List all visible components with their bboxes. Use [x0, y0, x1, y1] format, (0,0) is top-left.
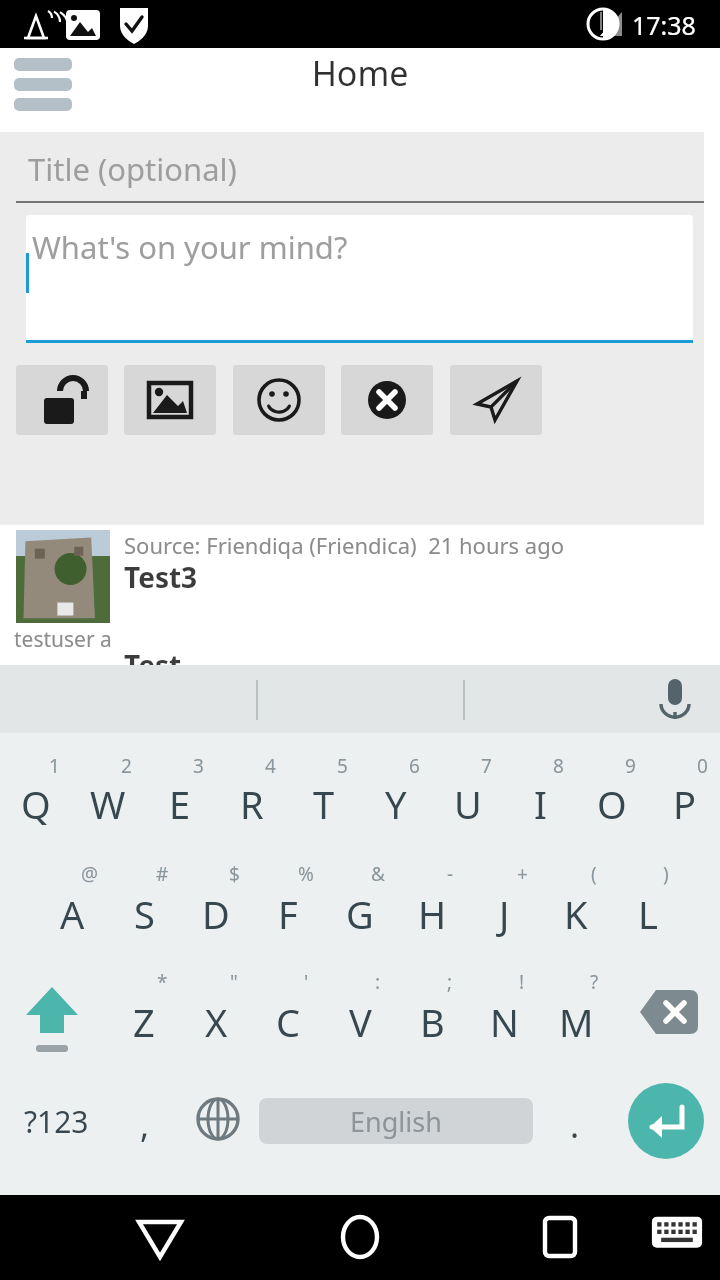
staticText: 3: [193, 753, 204, 779]
button[interactable]: Backspace: [630, 965, 706, 1071]
staticText: ,: [140, 1102, 150, 1148]
staticText: N: [490, 996, 519, 1048]
staticText: *: [157, 969, 168, 995]
button[interactable]: Permissions: [16, 365, 108, 435]
staticText: 6: [409, 753, 420, 779]
button[interactable]: C: [252, 965, 324, 1071]
button[interactable]: Q: [0, 745, 72, 851]
button[interactable]: ?123: [8, 1075, 104, 1167]
button[interactable]: Voice input: [645, 670, 705, 728]
staticText: E: [169, 778, 191, 830]
button[interactable]: Send: [450, 365, 542, 435]
button[interactable]: .: [540, 1075, 610, 1167]
staticText: Title (optional): [28, 148, 237, 190]
button[interactable]: Source: Friendiqa (Friendica) 21 hours a…: [120, 528, 720, 628]
staticText: 1: [49, 753, 60, 779]
button[interactable]: X: [180, 965, 252, 1071]
staticText: W: [90, 778, 126, 830]
button[interactable]: Z: [108, 965, 180, 1071]
staticText: G: [346, 888, 374, 940]
button[interactable]: Home: [320, 1200, 400, 1274]
staticText: +: [517, 861, 528, 887]
staticText: What's on your mind?: [32, 226, 348, 268]
staticText: ?123: [24, 1101, 89, 1142]
button[interactable]: Change language: [182, 1075, 254, 1167]
button[interactable]: U: [432, 745, 504, 851]
button[interactable]: N: [468, 965, 540, 1071]
staticText: I: [534, 778, 547, 830]
button[interactable]: V: [324, 965, 396, 1071]
button[interactable]: O: [576, 745, 648, 851]
staticText: ): [663, 861, 669, 887]
button[interactable]: Cancel: [341, 365, 433, 435]
staticText: T: [313, 778, 335, 830]
staticText: Y: [385, 778, 407, 830]
staticText: Test3: [124, 558, 198, 596]
staticText: (: [591, 861, 597, 887]
button[interactable]: M: [540, 965, 612, 1071]
staticText: :: [375, 969, 381, 995]
button[interactable]: B: [396, 965, 468, 1071]
button[interactable]: R: [216, 745, 288, 851]
button[interactable]: Recent apps: [520, 1200, 600, 1274]
staticText: Source: Friendiqa (Friendica) 21 hours a…: [124, 530, 565, 560]
button[interactable]: J: [468, 855, 540, 961]
staticText: S: [134, 888, 155, 940]
staticText: ;: [447, 969, 453, 995]
staticText: ": [230, 969, 238, 995]
staticText: ': [304, 969, 309, 995]
staticText: V: [349, 996, 372, 1048]
button[interactable]: E: [144, 745, 216, 851]
staticText: O: [597, 778, 627, 830]
button[interactable]: P: [648, 745, 720, 851]
staticText: testuser a: [14, 625, 112, 654]
staticText: 7: [481, 753, 492, 779]
button[interactable]: Enter: [628, 1083, 704, 1159]
button[interactable]: Add image: [124, 365, 216, 435]
button[interactable]: English: [259, 1098, 533, 1144]
button[interactable]: Hide keyboard: [644, 1203, 710, 1265]
staticText: &: [371, 861, 385, 887]
staticText: D: [202, 888, 230, 940]
button[interactable]: L: [612, 855, 684, 961]
button[interactable]: [26, 215, 693, 342]
button[interactable]: I: [504, 745, 576, 851]
button[interactable]: Insert emoji: [233, 365, 325, 435]
staticText: H: [418, 888, 447, 940]
button[interactable]: A: [36, 855, 108, 961]
button[interactable]: F: [252, 855, 324, 961]
staticText: $: [229, 861, 240, 887]
staticText: X: [205, 996, 228, 1048]
button[interactable]: Y: [360, 745, 432, 851]
button[interactable]: W: [72, 745, 144, 851]
staticText: .: [570, 1102, 580, 1148]
button[interactable]: D: [180, 855, 252, 961]
staticText: 0: [697, 753, 708, 779]
button[interactable]: Open navigation menu: [6, 54, 82, 120]
staticText: 4: [265, 753, 276, 779]
staticText: F: [278, 888, 298, 940]
button[interactable]: T: [288, 745, 360, 851]
staticText: @: [81, 861, 99, 887]
button[interactable]: H: [396, 855, 468, 961]
staticText: -: [447, 861, 454, 887]
button[interactable]: S: [108, 855, 180, 961]
staticText: 9: [625, 753, 636, 779]
button[interactable]: Back: [120, 1200, 200, 1274]
button[interactable]: ,: [110, 1075, 180, 1167]
staticText: U: [454, 778, 482, 830]
staticText: 17:38: [632, 8, 696, 42]
button[interactable]: Title (optional): [16, 136, 704, 202]
staticText: M: [559, 996, 594, 1048]
button[interactable]: K: [540, 855, 612, 961]
staticText: ?: [590, 969, 599, 995]
staticText: #: [156, 861, 169, 887]
staticText: R: [240, 778, 264, 830]
staticText: L: [638, 888, 658, 940]
staticText: Home: [0, 50, 720, 96]
button[interactable]: Shift: [14, 965, 90, 1071]
button[interactable]: G: [324, 855, 396, 961]
staticText: C: [276, 996, 301, 1048]
staticText: 8: [553, 753, 564, 779]
staticText: Q: [21, 778, 51, 830]
